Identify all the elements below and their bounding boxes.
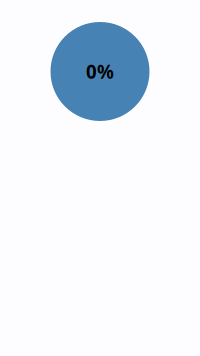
button[interactable]: 0%	[50, 22, 149, 121]
staticText: 0%	[86, 59, 114, 84]
